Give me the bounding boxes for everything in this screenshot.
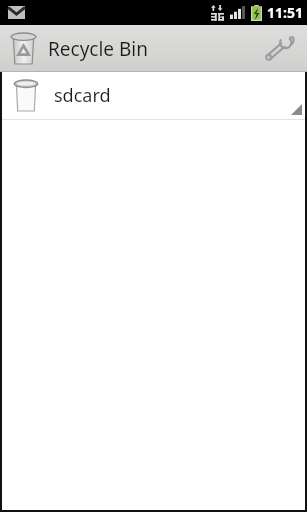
staticText: 11:51: [267, 3, 303, 22]
button[interactable]: Settings: [259, 29, 299, 69]
staticText: Recycle Bin: [48, 36, 149, 62]
button[interactable]: sdcard: [0, 72, 307, 119]
staticText: sdcard: [54, 83, 111, 108]
